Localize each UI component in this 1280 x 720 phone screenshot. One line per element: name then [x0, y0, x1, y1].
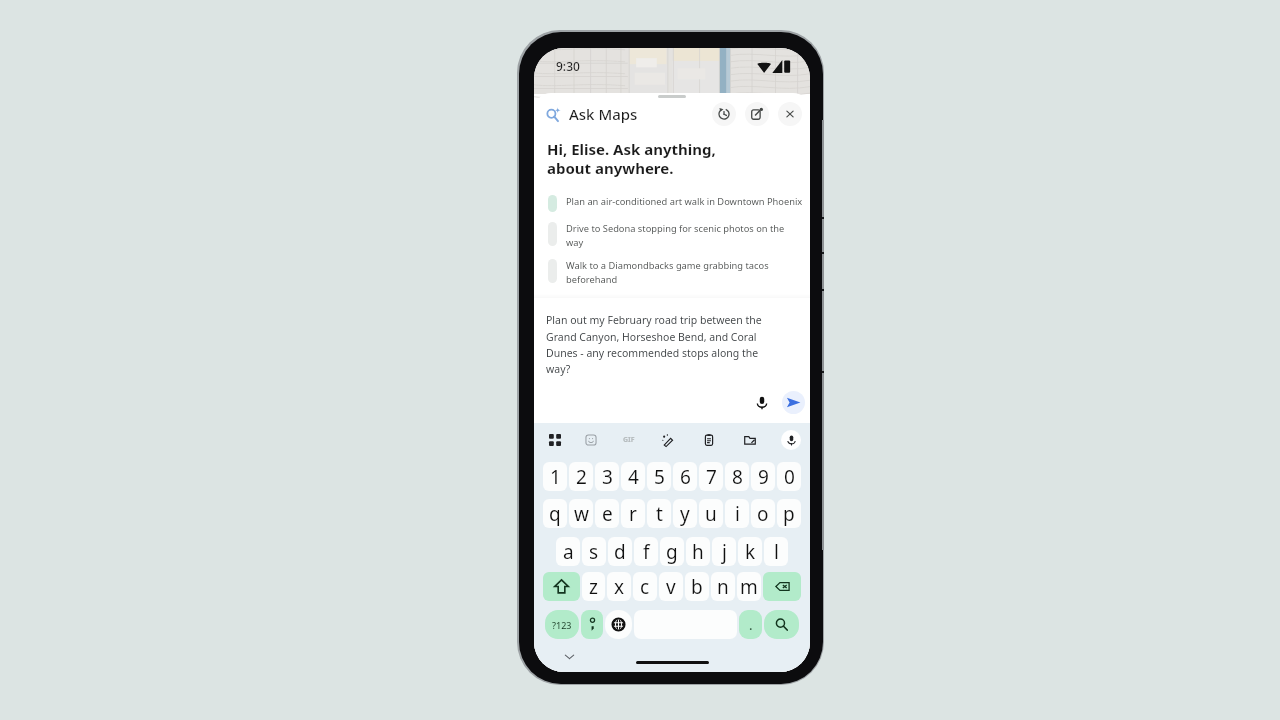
button[interactable]: History [712, 102, 736, 126]
button[interactable]: j [712, 537, 736, 566]
button[interactable]: i [725, 499, 749, 528]
staticText: Plan out my February road trip between t… [546, 313, 775, 376]
staticText: 7 [706, 464, 717, 490]
button[interactable]: t [647, 499, 671, 528]
staticText: 5 [654, 464, 665, 490]
button[interactable]: 8 [725, 462, 749, 491]
button[interactable]: Sticker [659, 431, 677, 449]
button[interactable]: Plan an air-conditioned art walk in Down… [548, 195, 810, 212]
staticText: n [717, 574, 729, 600]
button[interactable]: p [777, 499, 801, 528]
button[interactable]: ?123 [545, 610, 579, 639]
button[interactable]: v [659, 572, 683, 601]
staticText: 9:30 [556, 58, 580, 74]
button[interactable]: f [634, 537, 658, 566]
button[interactable]: Backspace [763, 572, 801, 601]
staticText: g [666, 539, 678, 565]
button[interactable]: Voice input [750, 391, 773, 414]
staticText: Drive to Sedona stopping for scenic phot… [566, 222, 794, 248]
button[interactable]: y [673, 499, 697, 528]
staticText: j [722, 539, 727, 565]
staticText: 6 [680, 464, 691, 490]
button[interactable]: GIF [620, 431, 638, 449]
button[interactable]: Voice typing [781, 430, 801, 450]
staticText: Hi, Elise. Ask anything, about anywhere. [547, 139, 716, 178]
button[interactable]: s [582, 537, 606, 566]
staticText: l [774, 539, 779, 565]
button[interactable]: 3 [595, 462, 619, 491]
staticText: f [643, 539, 650, 565]
button[interactable]: Close [778, 102, 802, 126]
button[interactable]: r [621, 499, 645, 528]
staticText: p [783, 501, 795, 527]
staticText: m [740, 574, 758, 600]
staticText: i [735, 501, 740, 527]
staticText: Walk to a Diamondbacks game grabbing tac… [566, 259, 778, 285]
staticText: b [691, 574, 703, 600]
staticText: Ask Maps [569, 104, 638, 124]
staticText: e [602, 501, 613, 527]
button[interactable]: k [738, 537, 762, 566]
staticText: 1 [550, 464, 561, 490]
staticText: u [705, 501, 717, 527]
button[interactable]: e [595, 499, 619, 528]
button[interactable]: New chat [745, 102, 769, 126]
button[interactable]: u [699, 499, 723, 528]
button[interactable]: Drive to Sedona stopping for scenic phot… [548, 222, 794, 248]
button[interactable]: 4 [621, 462, 645, 491]
button[interactable]: 5 [647, 462, 671, 491]
staticText: GIF [623, 435, 635, 445]
button[interactable]: Walk to a Diamondbacks game grabbing tac… [548, 259, 778, 285]
button[interactable]: n [711, 572, 735, 601]
button[interactable]: Send [782, 391, 805, 414]
button[interactable]: g [660, 537, 684, 566]
button[interactable]: Share [741, 431, 759, 449]
staticText: h [692, 539, 704, 565]
staticText: x [614, 574, 625, 600]
staticText: c [640, 574, 650, 600]
staticText: r [629, 501, 637, 527]
button[interactable]: Emoji [582, 431, 600, 449]
staticText: y [680, 501, 690, 527]
button[interactable]: w [569, 499, 593, 528]
staticText: v [666, 574, 676, 600]
staticText: . [749, 616, 753, 634]
button[interactable]: Apps [546, 431, 564, 449]
button[interactable]: Comma [581, 610, 603, 639]
button[interactable]: Shift [543, 572, 580, 601]
button[interactable]: Hide keyboard [560, 647, 578, 665]
button[interactable]: Change language [605, 610, 632, 639]
button[interactable]: 7 [699, 462, 723, 491]
button[interactable]: m [737, 572, 761, 601]
button[interactable]: l [764, 537, 788, 566]
button[interactable]: z [582, 572, 605, 601]
button[interactable]: 1 [543, 462, 567, 491]
button[interactable]: Clipboard [700, 431, 718, 449]
button[interactable]: q [543, 499, 567, 528]
staticText: 3 [602, 464, 613, 490]
button[interactable]: 2 [569, 462, 593, 491]
staticText: q [549, 501, 561, 527]
staticText: o [757, 501, 769, 527]
button[interactable]: c [633, 572, 657, 601]
staticText: d [614, 539, 626, 565]
button[interactable]: Search [764, 610, 799, 639]
staticText: t [656, 501, 663, 527]
staticText: ?123 [552, 619, 572, 631]
button[interactable]: . [739, 610, 762, 639]
button[interactable]: 9 [751, 462, 775, 491]
button[interactable]: d [608, 537, 632, 566]
staticText: 4 [628, 464, 639, 490]
button[interactable]: o [751, 499, 775, 528]
staticText: a [563, 539, 574, 565]
button[interactable]: h [686, 537, 710, 566]
button[interactable]: b [685, 572, 709, 601]
button[interactable]: 6 [673, 462, 697, 491]
button[interactable]: x [607, 572, 631, 601]
staticText: 8 [732, 464, 743, 490]
button[interactable]: 0 [777, 462, 801, 491]
staticText: 2 [576, 464, 587, 490]
button[interactable]: a [556, 537, 580, 566]
staticText: 0 [784, 464, 795, 490]
